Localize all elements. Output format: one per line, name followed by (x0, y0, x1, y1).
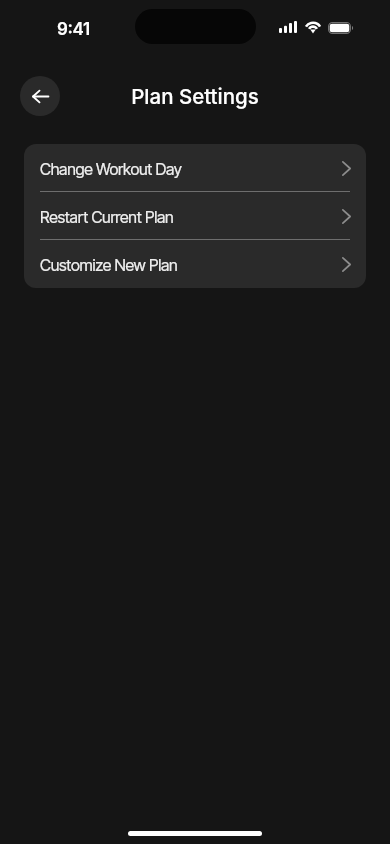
button[interactable]: Back (20, 76, 60, 116)
staticText: Change Workout Day (40, 159, 182, 178)
staticText: Plan Settings (131, 84, 259, 109)
staticText: 9:41 (57, 19, 90, 40)
staticText: Restart Current Plan (40, 207, 174, 226)
button[interactable]: Customize New Plan (24, 240, 366, 288)
staticText: Customize New Plan (40, 255, 178, 274)
button[interactable]: Restart Current Plan (24, 192, 366, 240)
button[interactable]: Change Workout Day (24, 144, 366, 192)
